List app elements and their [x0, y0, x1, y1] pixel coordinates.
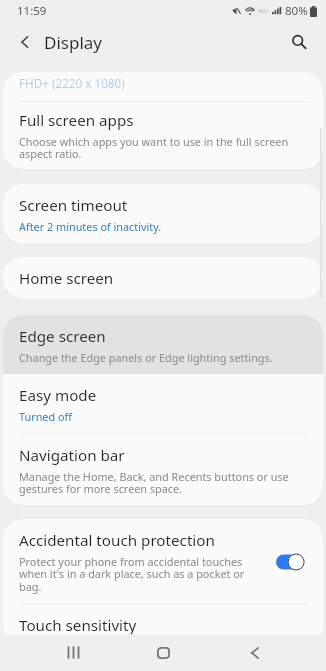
staticText: After 2 minutes of inactivity. [19, 219, 162, 234]
staticText: Turned off [19, 409, 72, 424]
staticText: Home screen [19, 268, 114, 289]
button[interactable]: Easy mode [3, 374, 323, 433]
staticText: Navigation bar [19, 445, 125, 466]
staticText: FHD+ (2220 x 1080) [19, 75, 125, 91]
button[interactable]: Touch sensitivity [3, 604, 323, 645]
staticText: Touch sensitivity [19, 615, 137, 636]
staticText: Full screen apps [19, 110, 134, 131]
button[interactable]: Back [10, 27, 40, 57]
staticText: Edge screen [19, 326, 106, 347]
staticText: 80% [285, 3, 308, 19]
staticText: Easy mode [19, 385, 97, 406]
button[interactable]: Screen timeout [3, 184, 323, 243]
button[interactable]: Recent apps [38, 634, 108, 671]
staticText: Accidental touch protection [19, 530, 215, 551]
staticText: Manage the Home, Back, and Recents butto… [19, 469, 307, 496]
staticText: Choose which apps you want to use in the… [19, 134, 307, 161]
staticText: 11:59 [17, 3, 47, 19]
staticText: Display [44, 31, 102, 54]
staticText: Protect your phone from accidental touch… [19, 554, 264, 594]
button[interactable]: Edge screen [3, 315, 323, 374]
button[interactable]: Accidental touch protection toggle [276, 553, 305, 571]
button[interactable]: Home [128, 634, 198, 671]
staticText: Change the Edge panels or Edge lighting … [19, 350, 273, 365]
button[interactable]: Back [220, 634, 290, 671]
button[interactable]: Accidental touch protection [3, 519, 323, 603]
button[interactable]: Home screen [3, 257, 323, 298]
button[interactable]: Search [285, 28, 313, 56]
button[interactable]: Navigation bar [3, 434, 323, 505]
staticText: Screen timeout [19, 195, 128, 216]
button[interactable]: Full screen apps [3, 102, 323, 169]
staticText: 4G+ [258, 7, 270, 15]
